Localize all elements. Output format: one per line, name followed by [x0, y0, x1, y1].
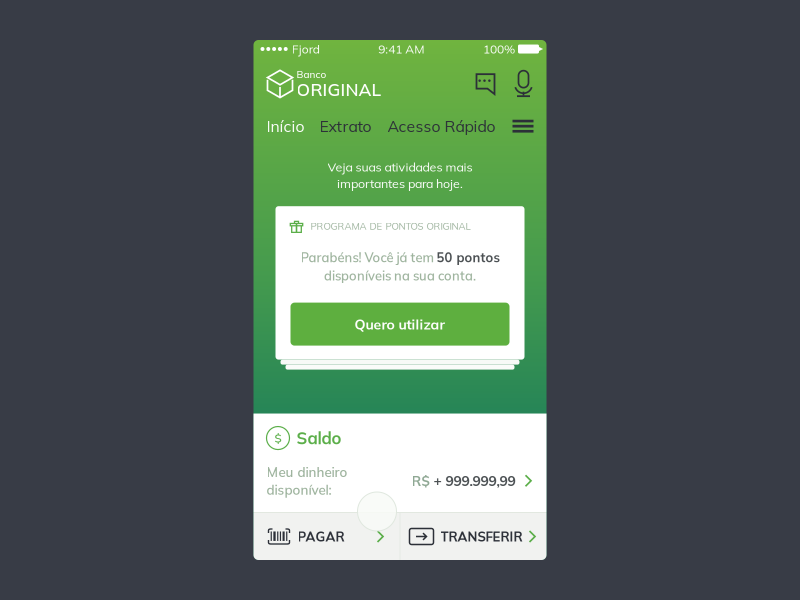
button[interactable]: Extrato	[319, 116, 371, 136]
button[interactable]: Menu	[512, 120, 533, 133]
button[interactable]: PAGAR	[253, 513, 399, 560]
staticText: Parabéns! Você já tem	[300, 249, 436, 265]
button[interactable]: Meu dinheiro	[253, 449, 546, 512]
button[interactable]: TRANSFERIR	[400, 513, 546, 560]
button[interactable]: Quero utilizar	[290, 303, 509, 346]
button[interactable]: Acesso Rápido	[387, 116, 495, 136]
staticText: Acesso Rápido	[387, 116, 495, 136]
staticText: 100%	[483, 41, 515, 57]
staticText: Início	[266, 116, 304, 136]
staticText: 9:41 AM	[378, 41, 424, 57]
staticText: R$	[411, 472, 433, 489]
staticText: Fjord	[292, 41, 320, 57]
button[interactable]: Início	[266, 116, 304, 136]
staticText: 50 pontos	[436, 249, 499, 265]
staticText: $	[274, 430, 281, 446]
staticText: TRANSFERIR	[440, 528, 522, 545]
staticText: Banco	[296, 68, 326, 80]
staticText: Saldo	[296, 428, 341, 448]
staticText: Meu dinheiro	[266, 463, 347, 480]
button[interactable]: Voice assistant	[513, 70, 533, 98]
staticText: Extrato	[319, 116, 371, 136]
staticText: disponíveis na sua conta.	[324, 267, 476, 284]
staticText: PAGAR	[297, 528, 344, 545]
staticText: importantes para hoje.	[337, 176, 463, 191]
button[interactable]: Messages	[475, 73, 495, 95]
staticText: + 999.999,99	[433, 472, 515, 489]
staticText: Veja suas atividades mais	[327, 159, 472, 175]
staticText: disponível:	[266, 481, 331, 498]
staticText: Quero utilizar	[354, 315, 445, 333]
staticText: PROGRAMA DE PONTOS ORIGINAL	[310, 220, 470, 232]
staticText: ORIGINAL	[296, 78, 381, 100]
